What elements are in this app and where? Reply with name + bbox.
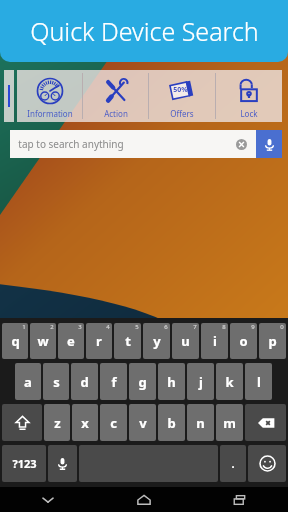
staticText: n xyxy=(196,414,205,432)
button[interactable]: i xyxy=(201,323,228,359)
button[interactable]: Recents xyxy=(192,487,288,512)
staticText: Quick Device Search xyxy=(30,14,259,48)
button[interactable]: Backspace xyxy=(245,404,286,441)
button[interactable]: ?123 xyxy=(2,445,46,482)
staticText: 8 xyxy=(222,323,226,331)
staticText: y xyxy=(153,332,161,350)
staticText: . xyxy=(231,456,235,471)
button[interactable]: o xyxy=(230,323,257,359)
button[interactable]: z xyxy=(44,404,70,441)
staticText: h xyxy=(167,373,176,391)
staticText: o xyxy=(239,332,248,350)
staticText: 0 xyxy=(280,323,284,331)
staticText: 50% xyxy=(173,85,188,95)
button[interactable]: f xyxy=(100,363,127,400)
staticText: a xyxy=(24,373,32,391)
button[interactable]: Quick Device Search xyxy=(0,0,288,62)
button[interactable]: Lock xyxy=(216,70,282,122)
staticText: e xyxy=(67,332,75,350)
staticText: j xyxy=(199,373,203,391)
staticText: 6 xyxy=(164,323,168,331)
staticText: 5 xyxy=(135,323,139,331)
staticText: s xyxy=(53,373,60,391)
button[interactable]: Emoji xyxy=(248,445,286,482)
button[interactable]: s xyxy=(43,363,69,400)
staticText: c xyxy=(110,414,117,432)
staticText: l xyxy=(257,373,261,391)
staticText: 3 xyxy=(78,323,82,331)
staticText: k xyxy=(225,373,234,391)
button[interactable]: . xyxy=(220,445,246,482)
staticText: m xyxy=(223,414,236,432)
staticText: q xyxy=(11,332,20,350)
button[interactable]: d xyxy=(71,363,98,400)
staticText: u xyxy=(181,332,190,350)
button[interactable]: Voice search xyxy=(256,130,282,158)
staticText: Offers xyxy=(170,108,194,119)
staticText: Information xyxy=(27,108,73,119)
button[interactable]: c xyxy=(100,404,127,441)
button[interactable]: a xyxy=(15,363,41,400)
staticText: f xyxy=(111,373,117,391)
button[interactable]: q xyxy=(2,323,28,359)
button[interactable]: u xyxy=(172,323,199,359)
button[interactable]: Home xyxy=(96,487,192,512)
button[interactable]: g xyxy=(129,363,156,400)
button[interactable]: Voice input xyxy=(48,445,77,482)
button[interactable]: t xyxy=(114,323,141,359)
staticText: x xyxy=(81,414,89,432)
button[interactable]: l xyxy=(245,363,272,400)
staticText: ?123 xyxy=(12,456,37,471)
button[interactable]: v xyxy=(129,404,156,441)
staticText: 9 xyxy=(251,323,255,331)
button[interactable]: Information xyxy=(17,70,82,122)
button[interactable]: 50% xyxy=(149,70,215,122)
button[interactable]: w xyxy=(30,323,56,359)
staticText: 2 xyxy=(50,323,54,331)
staticText: t xyxy=(125,332,131,350)
button[interactable]: Action xyxy=(83,70,148,122)
button[interactable]: k xyxy=(216,363,243,400)
staticText: d xyxy=(80,373,89,391)
staticText: b xyxy=(167,414,176,432)
staticText: w xyxy=(37,332,49,350)
button[interactable]: m xyxy=(216,404,243,441)
button[interactable]: b xyxy=(158,404,185,441)
staticText: 1 xyxy=(22,323,26,331)
button[interactable]: Hide keyboard xyxy=(0,487,96,512)
staticText: Action xyxy=(104,108,128,119)
button[interactable]: p xyxy=(259,323,286,359)
staticText: Lock xyxy=(240,108,258,119)
staticText: tap to search anything xyxy=(18,137,124,151)
staticText: r xyxy=(96,332,102,350)
button[interactable]: x xyxy=(72,404,98,441)
staticText: 4 xyxy=(106,323,110,331)
staticText: g xyxy=(138,373,147,391)
button[interactable]: e xyxy=(58,323,84,359)
button[interactable]: y xyxy=(143,323,170,359)
staticText: v xyxy=(139,414,147,432)
button[interactable]: Shift xyxy=(2,404,42,441)
staticText: z xyxy=(54,414,61,432)
staticText: p xyxy=(268,332,277,350)
button[interactable]: tap to search anything xyxy=(10,130,256,158)
staticText: 7 xyxy=(193,323,197,331)
button[interactable]: r xyxy=(86,323,112,359)
button[interactable]: j xyxy=(187,363,214,400)
button[interactable]: Clear xyxy=(234,137,248,151)
staticText: i xyxy=(213,332,217,350)
button[interactable]: h xyxy=(158,363,185,400)
button[interactable]: n xyxy=(187,404,214,441)
